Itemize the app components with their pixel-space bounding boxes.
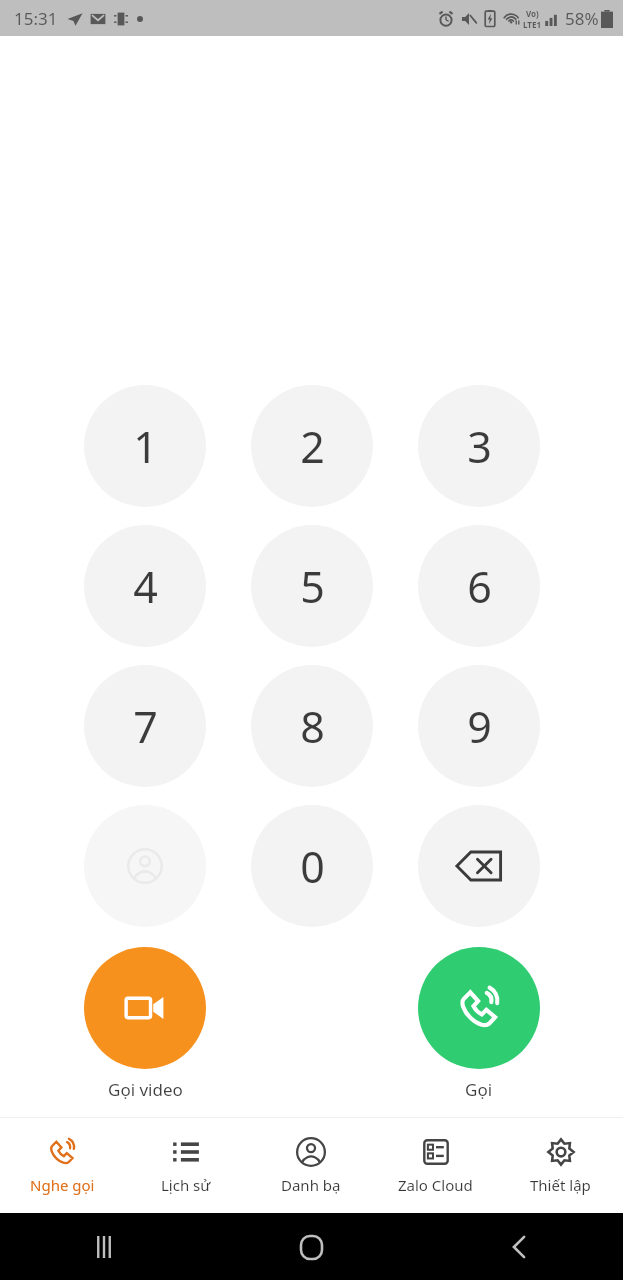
staticText: LTE1 — [523, 19, 541, 30]
staticText: 3 — [467, 417, 492, 476]
button[interactable]: 5 — [251, 525, 373, 647]
button[interactable]: Zalo Cloud — [373, 1118, 498, 1213]
staticText: 0 — [300, 837, 325, 896]
button[interactable]: Thiết lập — [498, 1118, 623, 1213]
staticText: Danh bạ — [281, 1175, 341, 1195]
staticText: 9 — [467, 697, 492, 756]
staticText: 2 — [300, 417, 325, 476]
button[interactable]: 9 — [418, 665, 540, 787]
button[interactable]: Back — [495, 1223, 543, 1271]
button[interactable]: Nghe gọi — [0, 1118, 124, 1213]
button[interactable]: Contacts — [84, 805, 206, 927]
staticText: Vo) — [526, 8, 539, 19]
staticText: 15:31 — [14, 7, 58, 30]
button[interactable]: Danh bạ — [248, 1118, 373, 1213]
button[interactable]: 3 — [418, 385, 540, 507]
button[interactable]: 8 — [251, 665, 373, 787]
button[interactable]: 4 — [84, 525, 206, 647]
staticText: Nghe gọi — [30, 1175, 95, 1195]
staticText: 1 — [133, 417, 158, 476]
button[interactable]: 2 — [251, 385, 373, 507]
staticText: Thiết lập — [530, 1175, 591, 1195]
staticText: Zalo Cloud — [398, 1175, 473, 1195]
staticText: 8 — [300, 697, 325, 756]
button[interactable]: Video call — [84, 947, 206, 1101]
button[interactable]: Lịch sử — [124, 1118, 248, 1213]
staticText: 6 — [467, 557, 492, 616]
staticText: Gọi video — [108, 1078, 183, 1101]
button[interactable]: Call — [418, 947, 540, 1101]
staticText: 4 — [133, 557, 158, 616]
button[interactable]: Recents — [80, 1223, 128, 1271]
staticText: 5 — [300, 557, 325, 616]
button[interactable]: 1 — [84, 385, 206, 507]
staticText: Lịch sử — [161, 1175, 211, 1195]
staticText: Gọi — [465, 1078, 493, 1101]
staticText: 58% — [565, 7, 599, 30]
button[interactable]: 6 — [418, 525, 540, 647]
button[interactable]: 7 — [84, 665, 206, 787]
button[interactable]: Backspace — [418, 805, 540, 927]
staticText: 7 — [133, 697, 158, 756]
button[interactable]: 0 — [251, 805, 373, 927]
button[interactable]: Home — [287, 1223, 335, 1271]
